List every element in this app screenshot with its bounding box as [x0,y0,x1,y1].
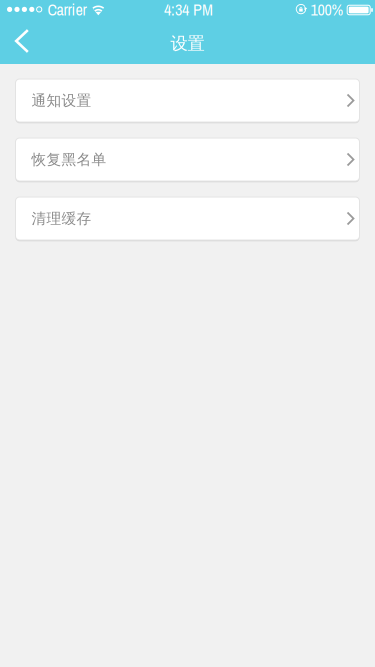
staticText: 4:34 PM [164,0,213,21]
button[interactable]: Back [0,19,44,63]
staticText: 100% [310,0,343,21]
button[interactable]: 通知设置 [15,79,359,122]
staticText: 通知设置 [31,91,91,109]
staticText: 设置 [170,33,204,54]
staticText: 恢复黑名单 [31,150,106,168]
button[interactable]: 恢复黑名单 [15,138,359,181]
staticText: Carrier [47,0,86,21]
staticText: 清理缓存 [31,209,91,227]
button[interactable]: 清理缓存 [15,197,359,240]
